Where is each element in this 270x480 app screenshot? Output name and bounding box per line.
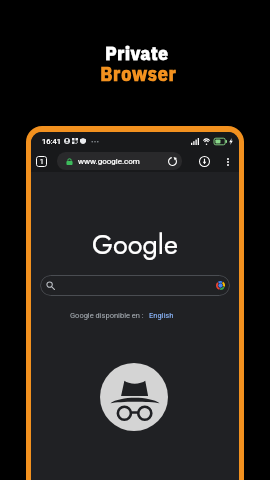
staticText: Browser [100,60,177,86]
staticText: Google disponible en : [70,311,144,320]
button[interactable]: Downloads [197,154,212,169]
staticText: www.google.com [78,157,140,166]
staticText: 16:41 [42,137,62,146]
staticText: English [149,311,174,320]
button[interactable]: English [149,311,174,320]
button[interactable]: Incognito mode [100,363,168,431]
button[interactable]: More options [221,155,234,168]
staticText: Google [92,225,178,264]
staticText: 1 [40,158,44,166]
button[interactable] [40,275,230,296]
staticText: Private [105,41,169,66]
button[interactable]: Reload [165,154,179,168]
button[interactable]: Tabs [36,156,47,167]
button[interactable]: www.google.com [57,152,182,170]
